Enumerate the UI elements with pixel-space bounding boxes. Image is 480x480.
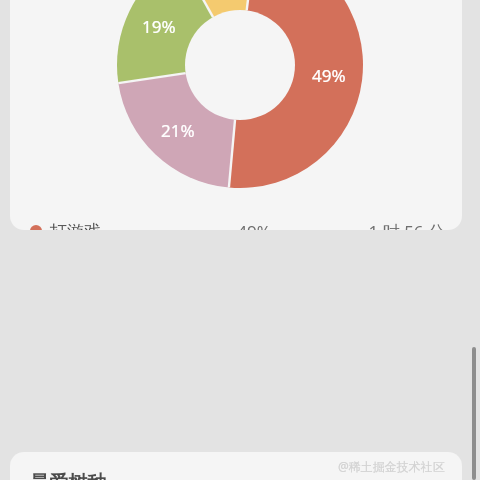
staticText: 1 时 56 分: [296, 220, 445, 230]
staticText: 21%: [161, 119, 195, 142]
other: Scrollbar: [472, 347, 476, 480]
staticText: 打游戏: [50, 221, 212, 230]
staticText: 49%: [212, 220, 296, 230]
staticText: @稀土掘金技术社区: [338, 458, 445, 474]
staticText: 最爱树种: [30, 471, 106, 480]
button[interactable]: 打游戏: [10, 202, 462, 230]
staticText: 19%: [142, 15, 176, 38]
button[interactable]: 最爱树种: [10, 452, 462, 480]
staticText: 49%: [312, 64, 346, 87]
